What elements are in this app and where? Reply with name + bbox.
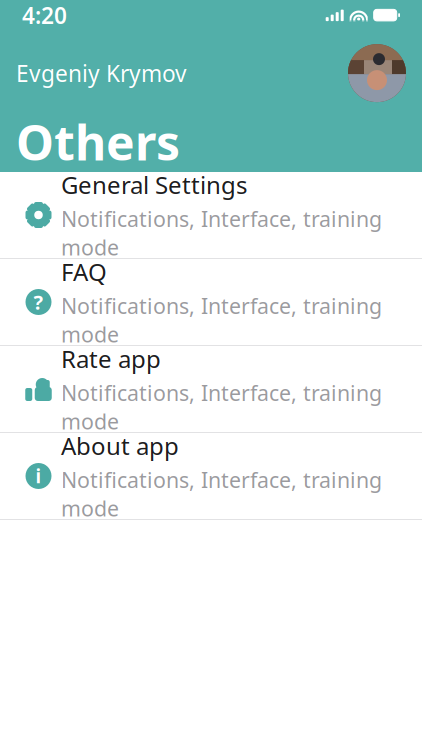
staticText: General Settings [61, 169, 247, 201]
button[interactable]: i [0, 433, 422, 520]
staticText: ? [33, 289, 43, 315]
staticText: FAQ [61, 256, 107, 288]
staticText: Rate app [61, 343, 161, 375]
staticText: Notifications, Interface, training mode [61, 292, 382, 348]
button[interactable]: General Settings [0, 172, 422, 259]
staticText: Notifications, Interface, training mode [61, 205, 382, 261]
button[interactable]: Rate app [0, 346, 422, 433]
staticText: About app [61, 430, 179, 462]
staticText: 4:20 [22, 0, 67, 30]
staticText: Others [16, 110, 180, 174]
staticText: Evgeniy Krymov [16, 58, 187, 88]
staticText: i [35, 464, 41, 488]
staticText: Notifications, Interface, training mode [61, 379, 382, 435]
button[interactable]: ? [0, 259, 422, 346]
staticText: Notifications, Interface, training mode [61, 466, 382, 522]
button[interactable]: Profile [348, 44, 406, 102]
